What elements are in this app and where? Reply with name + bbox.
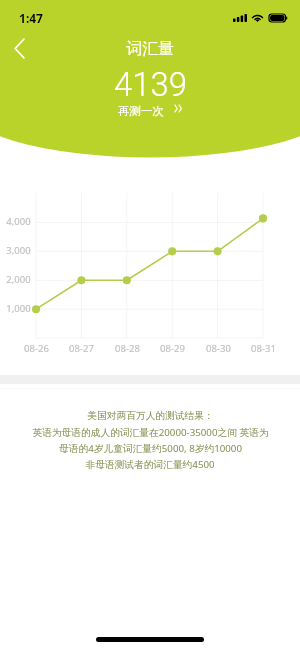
- staticText: 08-30: [206, 342, 231, 355]
- staticText: 1:47: [19, 10, 43, 24]
- staticText: 4139: [114, 66, 187, 104]
- staticText: 08-28: [115, 342, 140, 355]
- staticText: 08-29: [160, 342, 185, 355]
- staticText: 4,000: [6, 215, 31, 228]
- staticText: 2,000: [6, 273, 31, 286]
- staticText: 美国对两百万人的测试结果：: [87, 410, 214, 422]
- staticText: 词汇量: [126, 39, 174, 59]
- staticText: 08-26: [24, 342, 49, 355]
- staticText: 08-27: [69, 342, 94, 355]
- staticText: 08-31: [251, 342, 276, 355]
- button[interactable]: Back: [4, 33, 34, 63]
- staticText: 英语为母语的成人的词汇量在20000-35000之间 英语为: [32, 426, 269, 439]
- staticText: 1,000: [6, 302, 31, 315]
- button[interactable]: 再测一次: [112, 100, 188, 120]
- staticText: 再测一次: [118, 104, 164, 118]
- staticText: 非母语测试者的词汇量约4500: [85, 458, 215, 471]
- staticText: 3,000: [6, 244, 31, 257]
- staticText: 母语的4岁儿童词汇量约5000, 8岁约10000: [59, 442, 242, 455]
